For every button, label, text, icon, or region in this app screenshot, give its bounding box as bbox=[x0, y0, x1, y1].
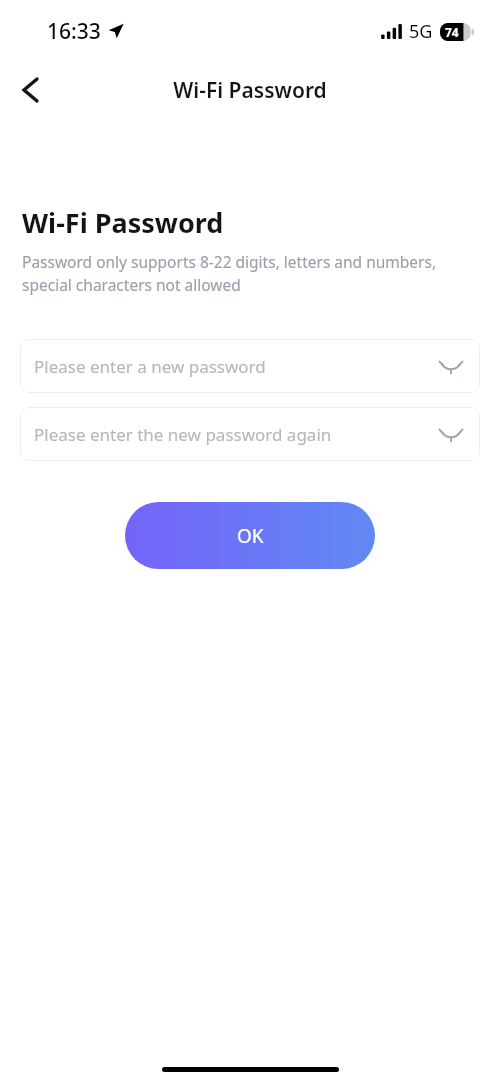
staticText: 16:33 bbox=[47, 17, 101, 46]
staticText: Please enter the new password again bbox=[34, 423, 332, 446]
staticText: 5G bbox=[409, 19, 433, 44]
staticText: Wi-Fi Password bbox=[173, 76, 327, 105]
staticText: OK bbox=[237, 523, 264, 549]
button[interactable]: Show password bbox=[431, 414, 471, 454]
staticText: Please enter a new password bbox=[34, 355, 266, 378]
button[interactable]: Show password bbox=[431, 346, 471, 386]
staticText: Wi-Fi Password bbox=[22, 204, 224, 241]
button[interactable]: Please enter the new password again bbox=[20, 407, 480, 461]
staticText: Password only supports 8-22 digits, lett… bbox=[22, 251, 478, 296]
button[interactable]: OK bbox=[125, 502, 375, 569]
button[interactable]: Back bbox=[8, 68, 52, 112]
button[interactable]: Please enter a new password bbox=[20, 339, 480, 393]
staticText: 74 bbox=[445, 24, 459, 40]
